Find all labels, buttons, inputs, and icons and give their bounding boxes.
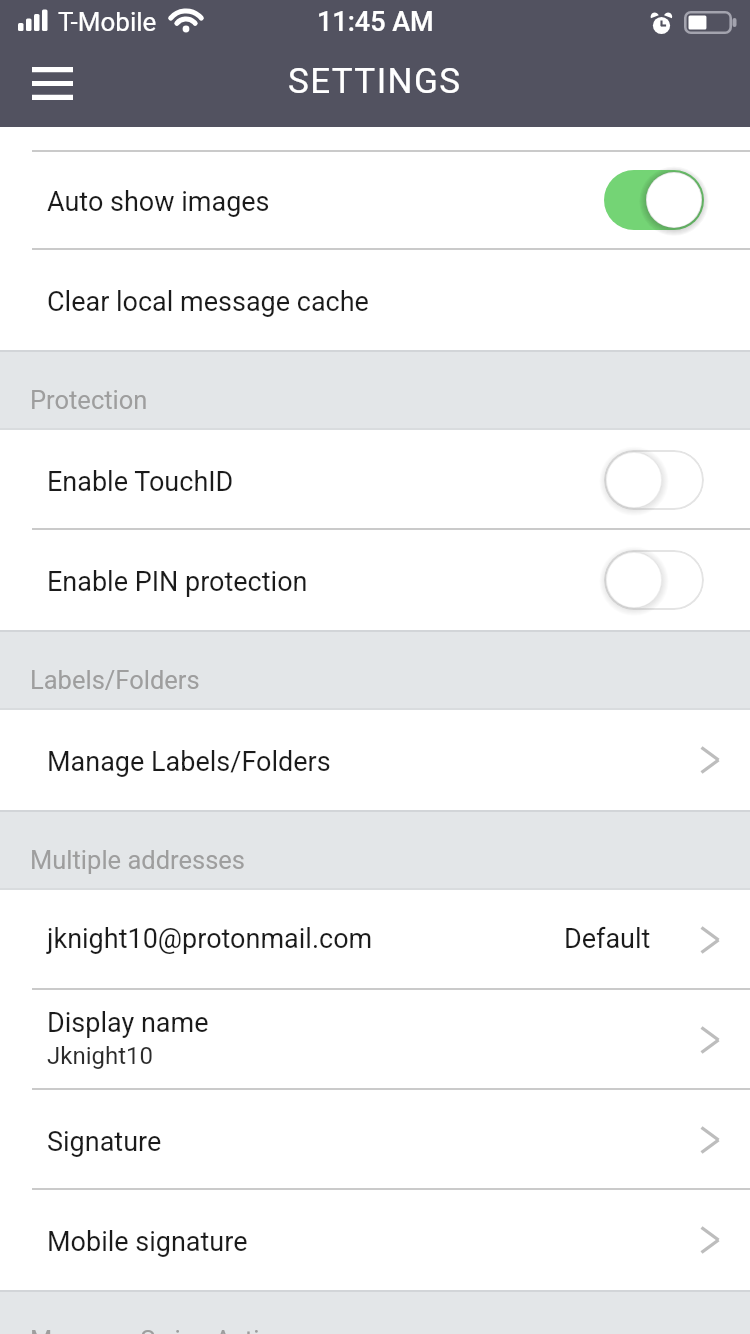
staticText: jknight10@protonmail.com	[47, 923, 373, 955]
staticText: Labels/Folders	[30, 665, 200, 695]
staticText: Manage Labels/Folders	[47, 746, 331, 778]
staticText: Jknight10	[47, 1042, 154, 1070]
staticText: Clear local message cache	[47, 286, 369, 318]
button[interactable]: Manage Labels/Folders	[0, 710, 750, 810]
staticText: Multiple addresses	[30, 845, 245, 875]
button[interactable]: Signature	[0, 1090, 750, 1190]
button[interactable]: Clear local message cache	[0, 250, 750, 350]
staticText: T-Mobile	[58, 7, 157, 37]
staticText: SETTINGS	[288, 61, 462, 102]
staticText: Signature	[47, 1126, 162, 1158]
button[interactable]: Enable TouchID	[0, 430, 750, 530]
button[interactable]: Menu	[16, 46, 88, 120]
button[interactable]: Display name	[0, 990, 750, 1090]
staticText: Mobile signature	[47, 1226, 248, 1258]
staticText: Auto show images	[47, 186, 270, 218]
staticText: Enable PIN protection	[47, 566, 308, 598]
staticText: 11:45 AM	[317, 6, 434, 38]
staticText: Protection	[30, 385, 148, 415]
button[interactable]: Enable PIN protection	[0, 530, 750, 630]
button[interactable]: Mobile signature	[0, 1190, 750, 1290]
staticText: Message Swipe Actions	[30, 1325, 302, 1334]
button[interactable]: Auto show images	[0, 150, 750, 250]
staticText: Display name	[47, 1007, 209, 1039]
button[interactable]: jknight10@protonmail.com	[0, 890, 750, 990]
staticText: Enable TouchID	[47, 466, 234, 498]
staticText: Default	[564, 923, 651, 955]
